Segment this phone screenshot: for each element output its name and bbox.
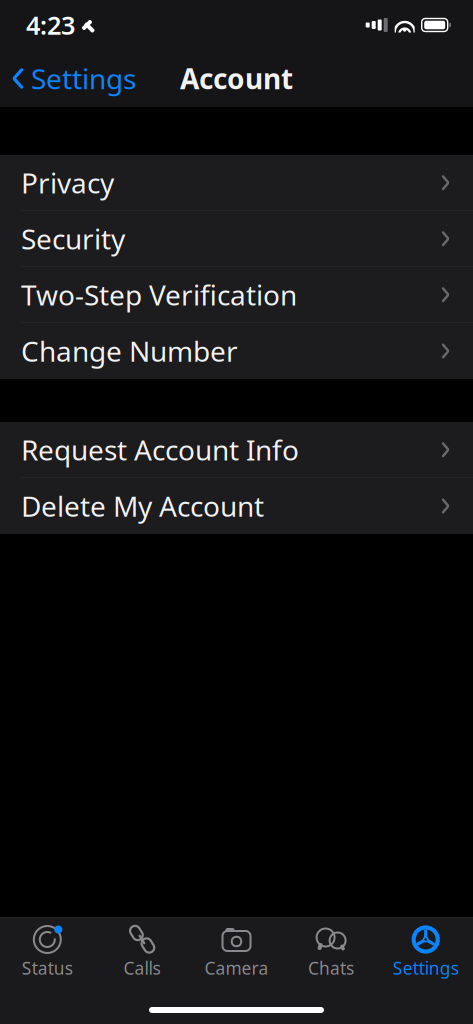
staticText: Delete My Account	[21, 487, 264, 525]
staticText: Settings	[31, 60, 136, 97]
button[interactable]: Two-Step Verification	[0, 267, 473, 323]
button[interactable]: Status	[0, 917, 95, 983]
button[interactable]: Change Number	[0, 323, 473, 379]
staticText: Camera	[204, 956, 268, 979]
button[interactable]: Settings	[0, 54, 144, 103]
button[interactable]: Delete My Account	[0, 478, 473, 534]
staticText: 4:23	[26, 8, 75, 42]
staticText: Status	[22, 956, 73, 979]
button[interactable]: Calls	[95, 917, 189, 983]
button[interactable]: Security	[0, 211, 473, 267]
staticText: Calls	[123, 956, 160, 979]
staticText: Request Account Info	[21, 431, 299, 468]
staticText: Security	[21, 220, 125, 257]
staticText: Account	[180, 60, 293, 97]
staticText: Chats	[308, 956, 354, 979]
staticText: Privacy	[21, 164, 114, 201]
button[interactable]: Request Account Info	[0, 422, 473, 478]
button[interactable]: Chats	[284, 917, 378, 983]
staticText: Settings	[393, 956, 459, 979]
button[interactable]: Camera	[189, 917, 284, 983]
staticText: Two-Step Verification	[21, 276, 297, 313]
staticText: Change Number	[21, 332, 238, 370]
button[interactable]: Settings	[378, 917, 473, 983]
button[interactable]: Privacy	[0, 155, 473, 211]
